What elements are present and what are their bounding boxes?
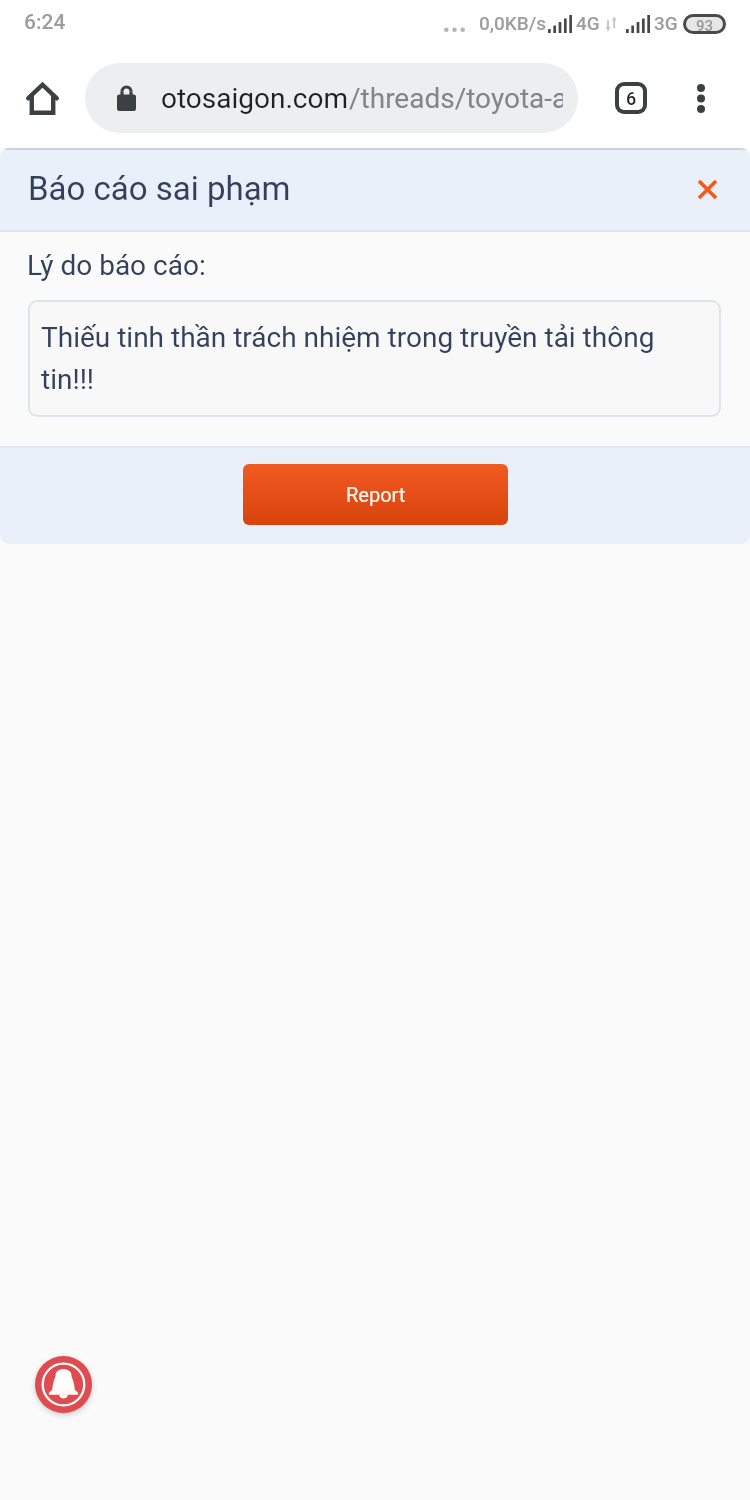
staticText: Report [346, 483, 406, 506]
button[interactable]: Thiếu tinh thần trách nhiệm trong truyền… [28, 300, 721, 417]
staticText: 93 [696, 17, 714, 31]
button[interactable]: More options [671, 68, 731, 128]
staticText: 6 [626, 88, 637, 109]
staticText: Lý do báo cáo: [27, 249, 206, 282]
button[interactable]: Home [12, 68, 72, 128]
staticText: 3G [654, 12, 678, 34]
staticText: Thiếu tinh thần trách nhiệm trong truyền… [41, 321, 681, 396]
staticText: /threads/toyota-a [349, 82, 563, 115]
staticText: 0,0KB/s [479, 12, 547, 34]
button[interactable]: Report [243, 464, 508, 525]
staticText: 6:24 [24, 10, 66, 35]
button[interactable]: Notifications [35, 1356, 92, 1413]
button[interactable]: Tabs [600, 67, 661, 128]
staticText: otosaigon.com [161, 82, 349, 115]
staticText: 4G [576, 12, 600, 34]
button[interactable]: otosaigon.com [85, 63, 578, 133]
staticText: Báo cáo sai phạm [28, 169, 291, 208]
button[interactable]: Close [684, 165, 730, 213]
